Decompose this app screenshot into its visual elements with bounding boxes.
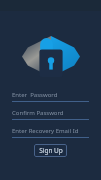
staticText: Enter Password xyxy=(12,91,58,99)
staticText: Enter Recovery Email Id xyxy=(12,127,79,135)
staticText: Confirm Password xyxy=(12,109,64,117)
button[interactable]: Confirm Password xyxy=(12,109,89,120)
button[interactable]: Enter Password xyxy=(12,91,89,102)
button[interactable]: Sign Up xyxy=(34,144,67,157)
button[interactable]: Enter Recovery Email Id xyxy=(12,127,89,138)
staticText: Sign Up xyxy=(39,146,63,155)
other: App logo xyxy=(22,36,80,77)
